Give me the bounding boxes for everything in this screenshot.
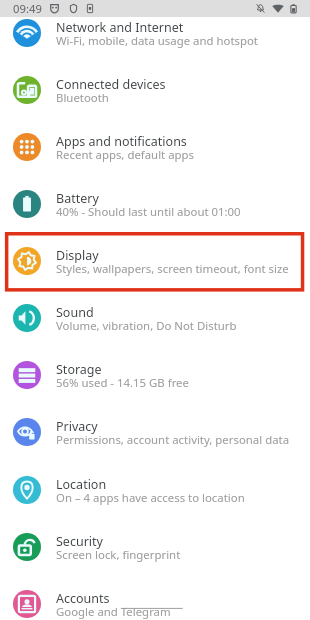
staticText: Battery	[56, 190, 99, 207]
staticText: 40% - Should last until about 01:00	[56, 204, 241, 220]
staticText: Screen lock, fingerprint	[56, 547, 181, 563]
staticText: Display	[56, 247, 99, 264]
staticText: Volume, vibration, Do Not Disturb	[56, 318, 237, 334]
button[interactable]: Display	[0, 232, 310, 289]
staticText: Wi-Fi, mobile, data usage and hotspot	[56, 33, 258, 49]
staticText: Permissions, account activity, personal …	[56, 432, 290, 448]
button[interactable]: Privacy	[0, 403, 310, 460]
staticText: Styles, wallpapers, screen timeout, font…	[56, 261, 289, 277]
button[interactable]: Battery	[0, 175, 310, 232]
button[interactable]: Accounts	[0, 575, 310, 620]
staticText: 09:49	[13, 1, 42, 16]
button[interactable]: Storage	[0, 346, 310, 403]
button[interactable]: Network and Internet	[0, 4, 310, 61]
staticText: 56% used - 14.15 GB free	[56, 375, 189, 391]
button[interactable]: Sound	[0, 289, 310, 346]
staticText: Google and Telegram	[56, 604, 171, 620]
staticText: On – 4 apps have access to location	[56, 490, 245, 506]
staticText: Apps and notifications	[56, 133, 187, 150]
staticText: Recent apps, default apps	[56, 147, 195, 163]
staticText: Connected devices	[56, 76, 166, 93]
staticText: Location	[56, 476, 107, 493]
staticText: Sound	[56, 304, 94, 321]
staticText: Network and Internet	[56, 19, 184, 36]
staticText: Privacy	[56, 418, 98, 435]
button[interactable]: Location	[0, 461, 310, 518]
button[interactable]: Connected devices	[0, 61, 310, 118]
staticText: Accounts	[56, 590, 110, 607]
button[interactable]: Apps and notifications	[0, 118, 310, 175]
staticText: Bluetooth	[56, 90, 109, 106]
button[interactable]: Security	[0, 518, 310, 575]
staticText: Storage	[56, 361, 102, 378]
staticText: Security	[56, 533, 103, 550]
